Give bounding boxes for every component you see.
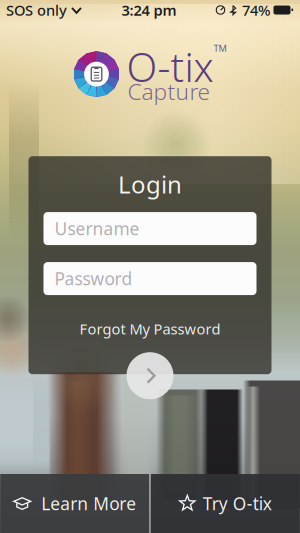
staticText: Username xyxy=(54,217,139,240)
staticText: Learn More xyxy=(41,492,136,515)
staticText: O-tix xyxy=(126,40,213,93)
staticText: Login xyxy=(118,168,182,200)
button[interactable]: Sign in xyxy=(126,352,173,399)
staticText: 3:24 pm xyxy=(121,0,176,20)
button[interactable]: Learn More xyxy=(0,474,149,533)
staticText: SOS only xyxy=(6,0,67,20)
staticText: Password xyxy=(54,267,132,290)
staticText: Forgot My Password xyxy=(79,319,220,339)
button[interactable]: Password xyxy=(43,262,256,295)
button[interactable]: Try O-tix xyxy=(151,474,300,533)
staticText: Capture xyxy=(127,76,210,106)
staticText: 74% xyxy=(242,0,270,20)
button[interactable]: Username xyxy=(43,212,256,245)
staticText: TM xyxy=(213,42,226,54)
staticText: Try O-tix xyxy=(203,492,272,515)
button[interactable]: Forgot My Password xyxy=(67,312,232,346)
